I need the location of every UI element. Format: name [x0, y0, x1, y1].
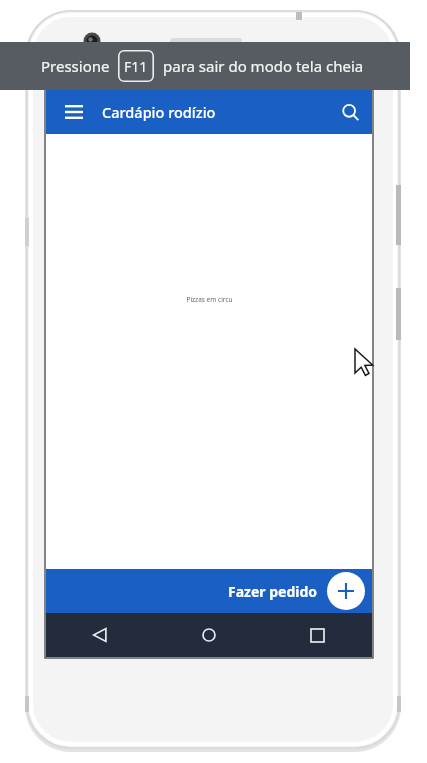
staticText: Pressione	[41, 56, 110, 76]
staticText: Pizzas em circu	[186, 295, 233, 304]
staticText: Fazer pedido	[228, 582, 318, 601]
staticText: para sair do modo tela cheia	[163, 56, 364, 76]
button[interactable]: Recent apps	[263, 613, 372, 657]
button[interactable]: Back	[46, 613, 154, 657]
staticText: Cardápio rodízio	[102, 102, 216, 122]
button[interactable]: Adicionar pedido	[327, 572, 365, 610]
button[interactable]: Fazer pedido	[228, 569, 372, 613]
staticText: F11	[124, 57, 148, 76]
button[interactable]: Menu	[55, 93, 93, 131]
button[interactable]: Search	[328, 90, 372, 134]
button[interactable]: Home	[154, 613, 263, 657]
